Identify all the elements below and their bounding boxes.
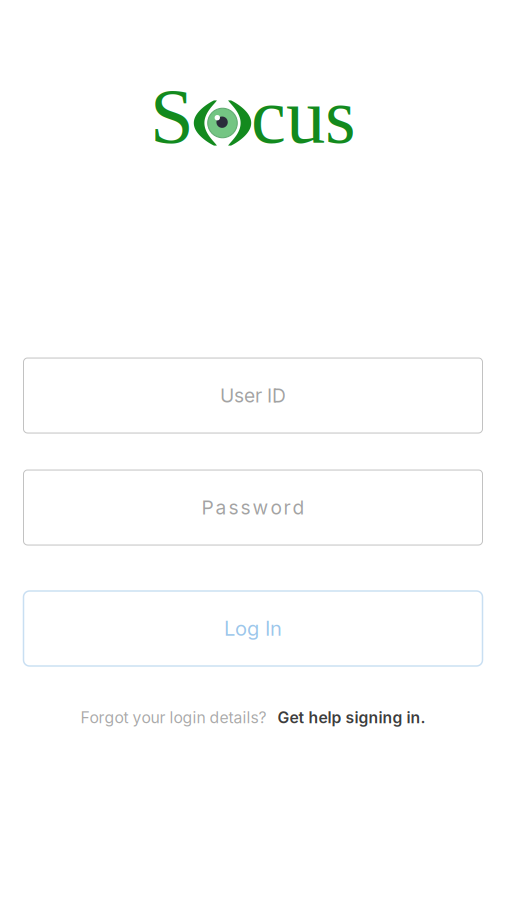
staticText: P a s s w o r d: [201, 496, 304, 519]
button[interactable]: User ID: [23, 358, 482, 433]
staticText: Forgot your login details?: [80, 708, 266, 727]
button[interactable]: P a s s w o r d: [23, 470, 482, 545]
button[interactable]: Log In: [23, 591, 482, 666]
button[interactable]: Get help signing in.: [277, 708, 425, 727]
staticText: Log In: [224, 616, 282, 641]
staticText: cus: [251, 72, 356, 159]
staticText: S: [150, 72, 194, 159]
staticText: Get help signing in.: [277, 708, 425, 727]
staticText: User ID: [220, 384, 286, 407]
